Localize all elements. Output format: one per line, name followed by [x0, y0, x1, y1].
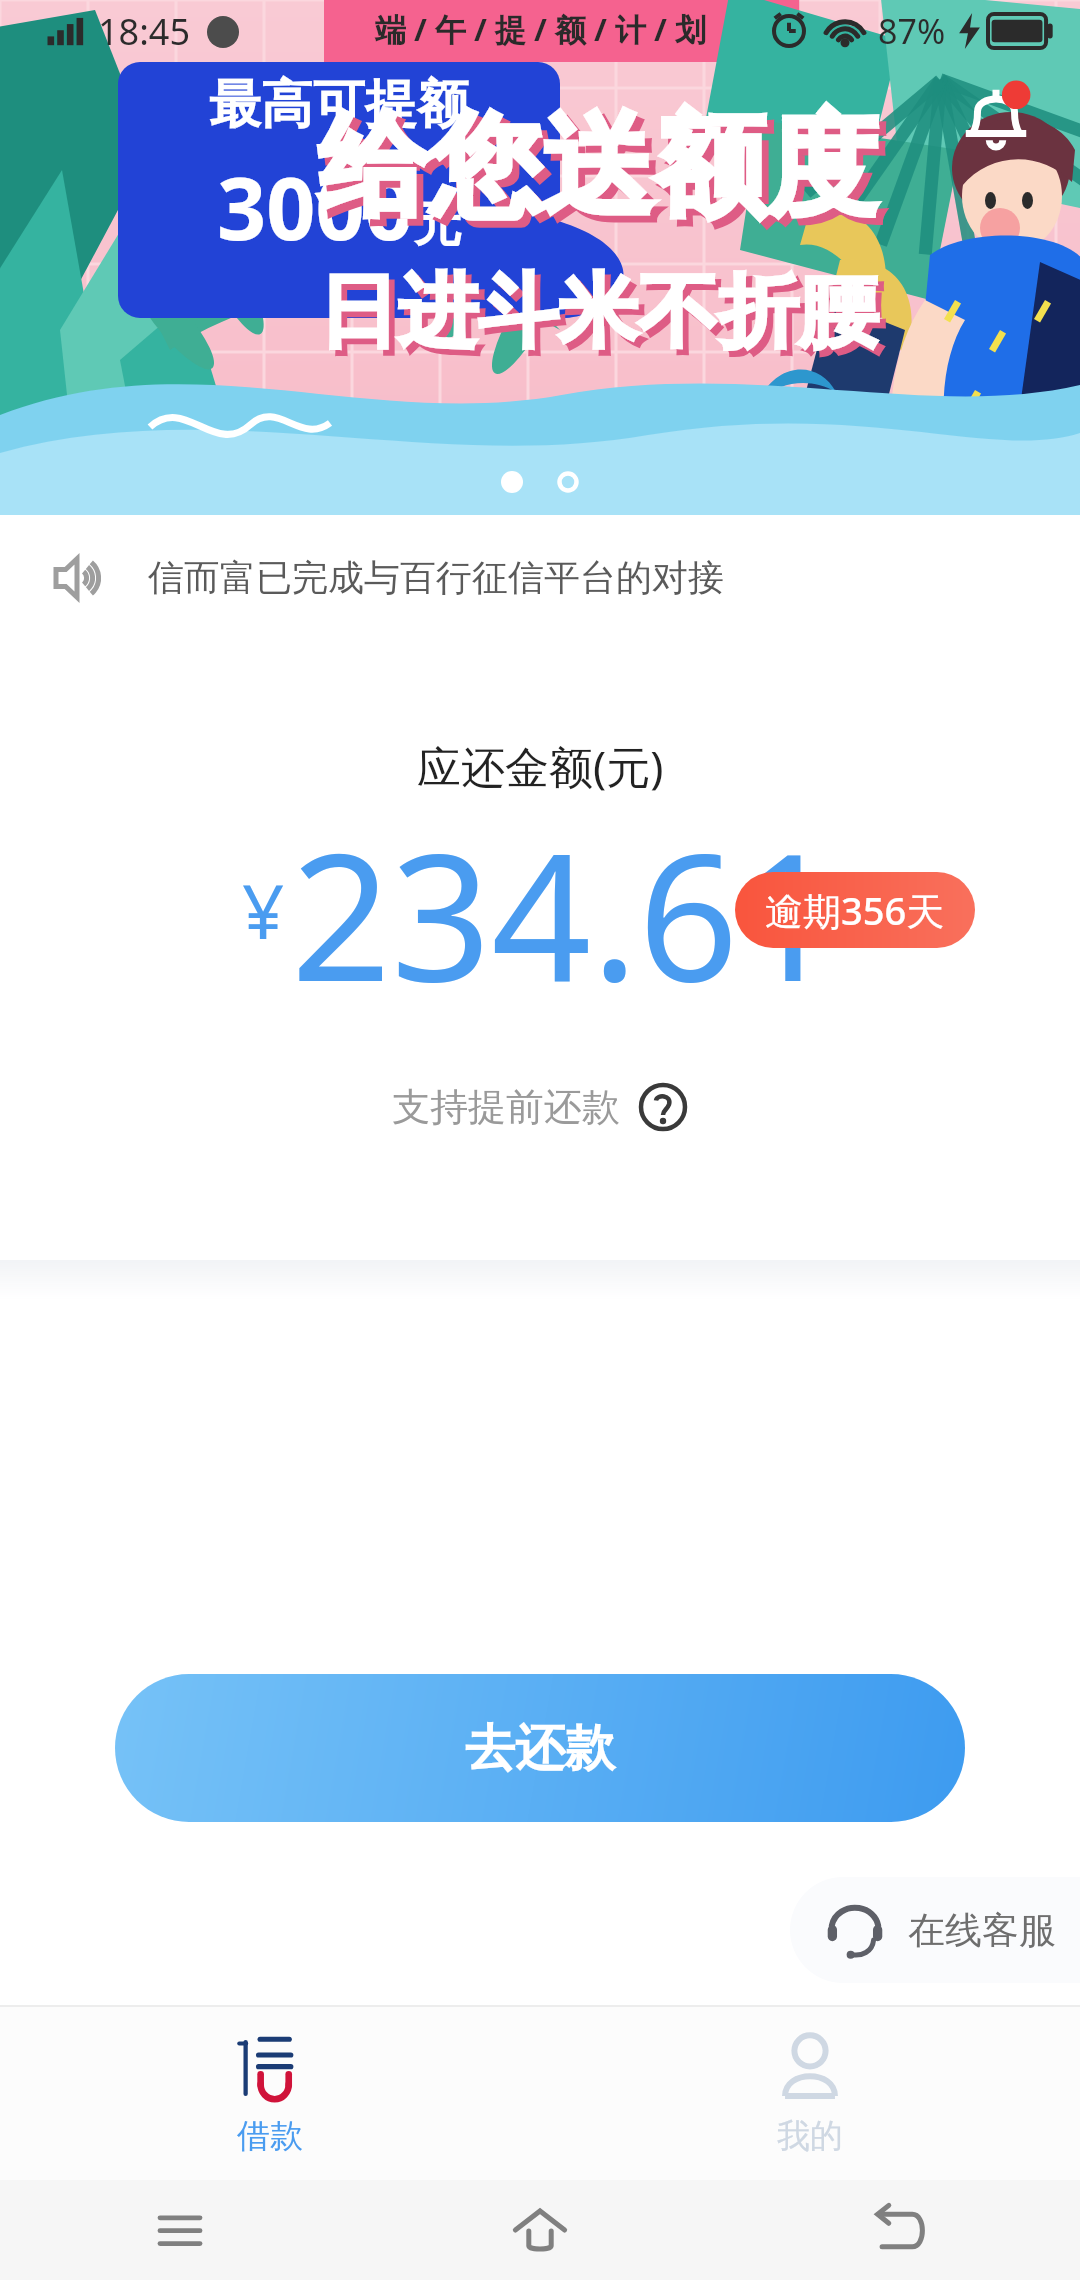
- staticText: 日进斗米不折腰: [318, 262, 878, 363]
- button[interactable]: Recent apps: [0, 2180, 360, 2280]
- button[interactable]: Notifications: [954, 78, 1038, 162]
- staticText: 给您送额度: [325, 103, 885, 244]
- button[interactable]: Back: [720, 2180, 1080, 2280]
- staticText: 在线客服: [908, 1907, 1056, 1954]
- button[interactable]: 端 / 午 / 提 / 额 / 计 / 划: [0, 0, 1080, 515]
- staticText: 3000: [217, 148, 414, 265]
- staticText: 给您送额度: [318, 96, 878, 237]
- staticText: 支持提前还款: [392, 1083, 620, 1131]
- staticText: 234.61: [291, 794, 839, 1024]
- staticText: 元: [414, 195, 462, 255]
- staticText: 87%: [878, 8, 946, 54]
- staticText: 日进斗米不折腰: [324, 268, 884, 369]
- staticText: 应还金额(元): [417, 736, 664, 796]
- staticText: 信而富已完成与百行征信平台的对接: [148, 555, 724, 600]
- button[interactable]: 信而富已完成与百行征信平台的对接: [0, 515, 1080, 640]
- other: Help: [638, 1082, 688, 1132]
- button[interactable]: 我的: [540, 2005, 1080, 2180]
- button[interactable]: 支持提前还款: [392, 1082, 688, 1132]
- button[interactable]: 在线客服: [790, 1877, 1080, 1983]
- staticText: 端 / 午 / 提 / 额 / 计 / 划: [375, 8, 706, 50]
- staticText: 最高可提额: [209, 72, 469, 138]
- staticText: 逾期356天: [765, 884, 945, 936]
- button[interactable]: 逾期356天: [735, 872, 975, 948]
- button[interactable]: 借款: [0, 2005, 540, 2180]
- staticText: ¥: [242, 860, 285, 961]
- staticText: 我的: [777, 2115, 843, 2157]
- staticText: 借款: [237, 2115, 303, 2157]
- button[interactable]: 去还款: [115, 1674, 965, 1822]
- staticText: 去还款: [465, 1717, 615, 1780]
- staticText: 18:45: [98, 7, 191, 56]
- button[interactable]: Home: [360, 2180, 720, 2280]
